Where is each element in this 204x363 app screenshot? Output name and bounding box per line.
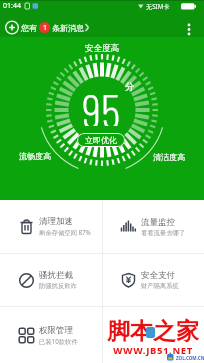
- staticText: WWW.JB51.NET: [113, 344, 193, 357]
- staticText: 您有: [21, 23, 37, 33]
- staticText: 流畅度高: [19, 151, 51, 161]
- staticText: 看看流量去哪了: [141, 229, 186, 237]
- button[interactable]: 骚扰拦截: [0, 254, 102, 306]
- staticText: 骚扰拦截: [39, 270, 73, 281]
- staticText: ZOL.COM.CN: [176, 355, 204, 361]
- staticText: 防骚扰反欺诈: [39, 282, 77, 290]
- staticText: 清洁度高: [153, 152, 185, 162]
- staticText: 财产隔离系统: [141, 282, 179, 290]
- button[interactable]: 流量监控: [102, 200, 204, 253]
- staticText: 1: [43, 23, 48, 33]
- staticText: 安全支付: [141, 270, 175, 281]
- staticText: 立即优化: [85, 135, 117, 145]
- button[interactable]: 清理加速: [0, 200, 102, 253]
- staticText: 清理加速: [39, 216, 73, 227]
- staticText: 权限管理: [39, 325, 73, 336]
- button[interactable]: 您有: [0, 12, 204, 37]
- staticText: 流量监控: [141, 217, 175, 228]
- staticText: 剩余存储空间 87%: [39, 228, 91, 237]
- staticText: 已装10款软件: [39, 337, 78, 346]
- staticText: 无SIM卡: [146, 2, 170, 10]
- staticText: 95: [82, 81, 121, 126]
- staticText: 安全度高: [85, 43, 119, 54]
- staticText: 脚本之家: [107, 317, 199, 345]
- button[interactable]: 立即优化: [77, 133, 125, 147]
- staticText: 分: [125, 81, 135, 93]
- staticText: 01:44: [3, 1, 21, 11]
- button[interactable]: 权限管理: [0, 307, 102, 363]
- button[interactable]: 安全支付: [102, 254, 204, 306]
- staticText: 条新消息: [52, 23, 84, 33]
